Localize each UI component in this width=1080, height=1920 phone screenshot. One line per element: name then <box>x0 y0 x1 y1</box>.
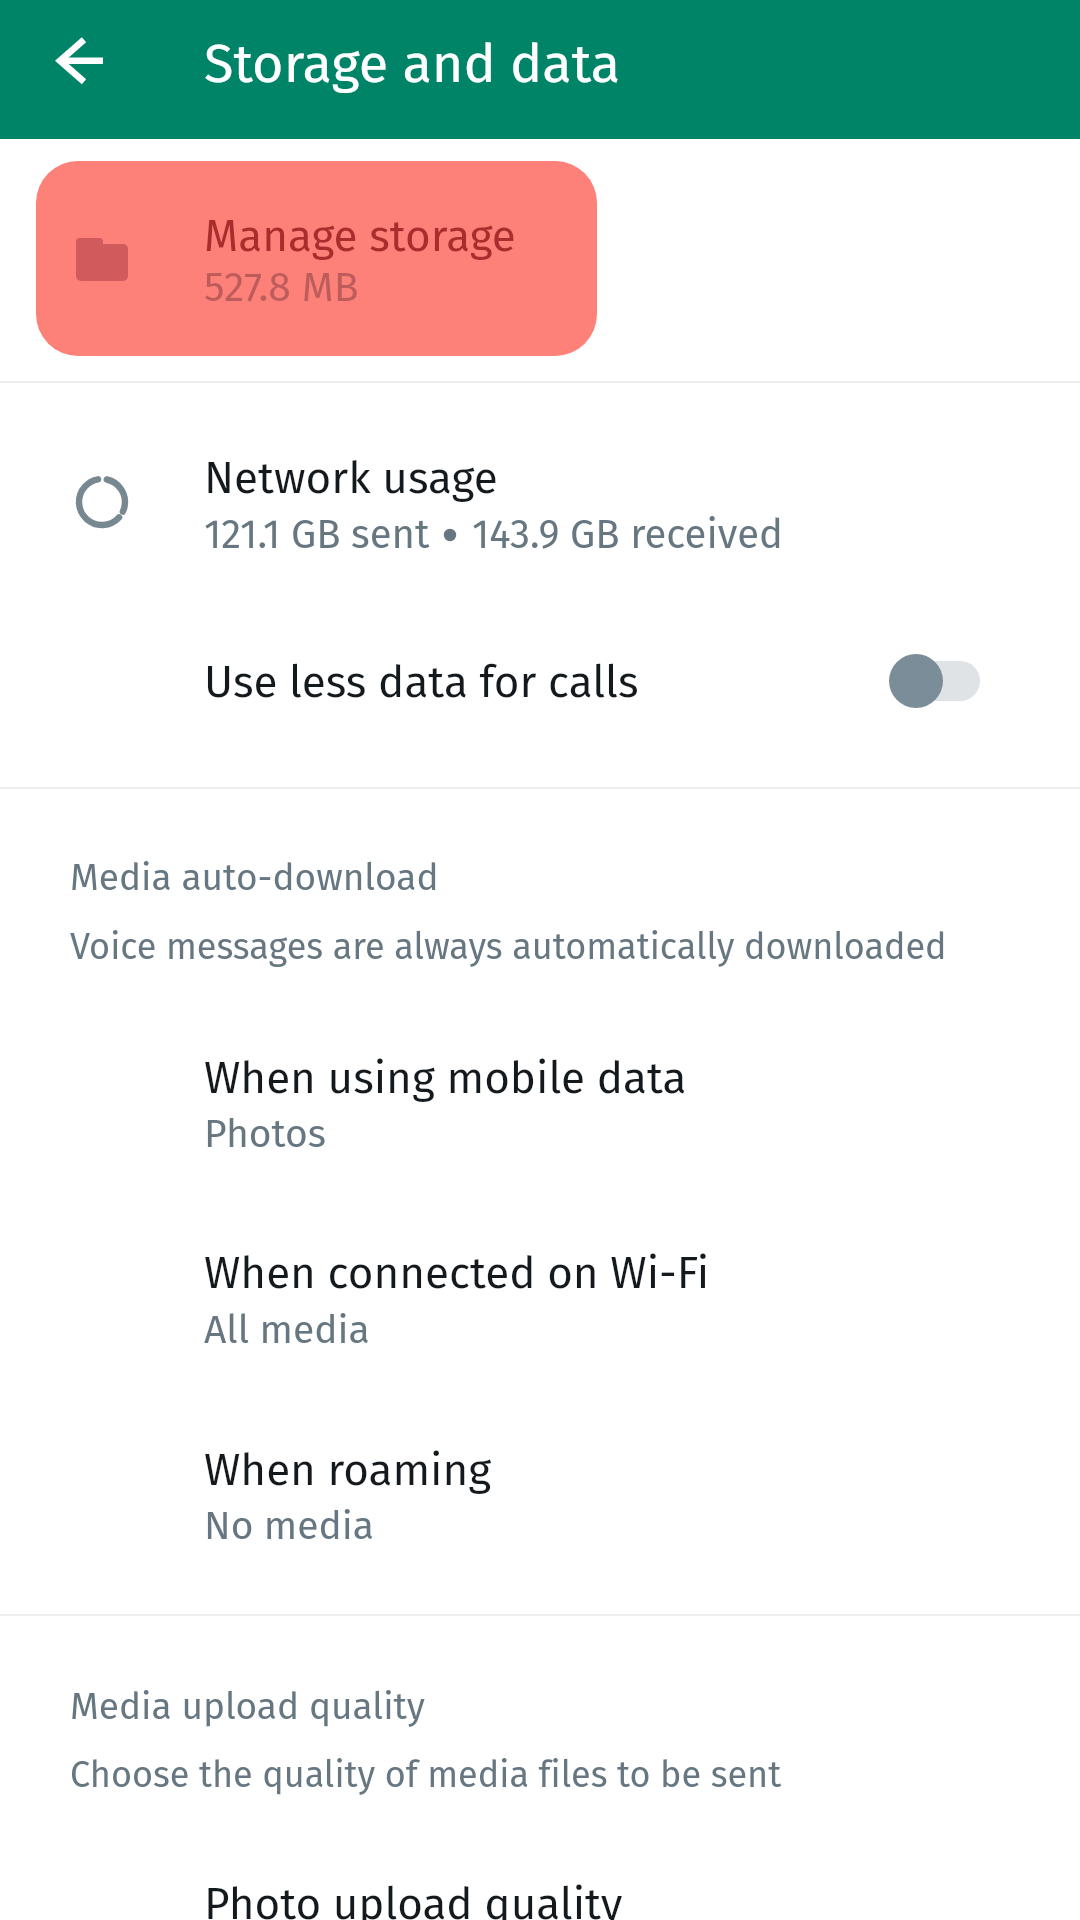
staticText: Choose the quality of media files to be … <box>70 1753 782 1796</box>
button[interactable]: When using mobile data <box>0 1010 1080 1206</box>
button[interactable]: Manage storage <box>36 161 597 356</box>
staticText: Photo upload quality <box>204 1878 623 1920</box>
staticText: When using mobile data <box>204 1052 687 1105</box>
staticText: Media upload quality <box>70 1684 425 1728</box>
staticText: 121.1 GB sent <box>204 511 430 559</box>
staticText: All media <box>204 1307 370 1354</box>
staticText: Photos <box>204 1111 326 1158</box>
staticText: Network usage <box>204 452 498 505</box>
staticText: Media auto-download <box>70 855 439 899</box>
staticText: No media <box>204 1503 374 1550</box>
button[interactable]: Use less data for calls, off <box>860 628 1010 734</box>
staticText: 527.8 MB <box>204 263 359 312</box>
staticText: When roaming <box>204 1444 492 1497</box>
button[interactable]: Network usage <box>0 383 1080 585</box>
staticText: Manage storage <box>204 210 516 263</box>
staticText: Voice messages are always automatically … <box>70 925 947 968</box>
button[interactable]: Photo upload quality <box>0 1838 1080 1920</box>
staticText: Use less data for calls <box>204 656 639 709</box>
staticText: Storage and data <box>204 32 621 97</box>
staticText: When connected on Wi-Fi <box>204 1247 710 1300</box>
button[interactable]: When roaming <box>0 1402 1080 1598</box>
button[interactable]: Navigate back <box>18 0 142 124</box>
staticText: 143.9 GB received <box>472 511 783 559</box>
button[interactable]: When connected on Wi-Fi <box>0 1206 1080 1402</box>
button[interactable]: Use less data for calls <box>0 600 1080 786</box>
